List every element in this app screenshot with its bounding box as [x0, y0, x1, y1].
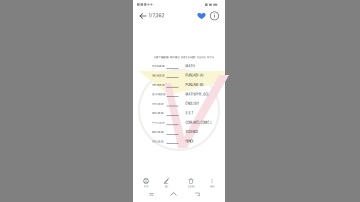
staticText: 4/10/2020 — [152, 121, 165, 124]
staticText: More — [209, 185, 214, 188]
staticText: PUNJABI (B) — [185, 83, 203, 87]
button[interactable]: Add to favourites — [196, 10, 207, 21]
staticText: 18/09/2020 — [152, 74, 165, 77]
staticText: Edit — [164, 185, 168, 188]
button[interactable]: Delete — [179, 174, 202, 190]
staticText: 19/09/2020 — [152, 83, 165, 86]
staticText: 6/10/2020 — [152, 131, 164, 133]
staticText: 7/10/2020 — [152, 140, 164, 143]
staticText: S.S.T — [185, 111, 193, 115]
staticText: Print — [143, 185, 148, 188]
staticText: 17-09-2020 — [152, 65, 165, 68]
staticText: 1/10/2020 — [152, 102, 164, 105]
staticText: COM/WELCOME L — [185, 121, 212, 124]
staticText: PUNJABI (A) — [185, 74, 203, 77]
button[interactable]: More — [200, 174, 223, 190]
staticText: ENGLISH — [185, 102, 198, 105]
staticText: SEPTEMBER PAPERS DATE SHEET CLASS 10TH — [154, 56, 214, 59]
button[interactable]: File information — [209, 10, 220, 21]
button[interactable]: Edit — [155, 174, 178, 190]
staticText: 20/09/2020 — [152, 93, 166, 96]
button[interactable]: Recent apps — [147, 190, 165, 201]
button[interactable]: Back — [193, 190, 211, 201]
staticText: SCIENCE — [185, 130, 198, 134]
staticText: 3/10/2020 — [152, 112, 164, 115]
staticText: HINDI — [185, 140, 193, 143]
button[interactable]: Print — [134, 174, 157, 190]
button[interactable]: Home — [169, 190, 187, 201]
staticText: 1/7,362 — [148, 13, 164, 18]
staticText: MATH — [185, 64, 194, 68]
staticText: MATH/PHY./SCI. — [185, 93, 209, 96]
staticText: Delete — [187, 185, 194, 188]
button[interactable]: Back — [137, 10, 149, 22]
